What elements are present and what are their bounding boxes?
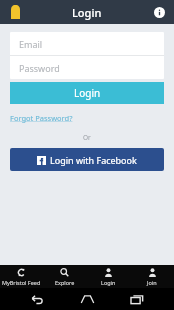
button[interactable]: Information	[150, 3, 168, 21]
staticText: MyBristol Feed	[2, 279, 41, 286]
button[interactable]: Forgot Password?	[10, 112, 73, 124]
button[interactable]: Password	[10, 56, 164, 79]
button[interactable]: MyBristol Feed	[0, 265, 43, 288]
button[interactable]: Email	[10, 32, 164, 55]
staticText: Login	[72, 5, 102, 20]
button[interactable]: Menu	[6, 3, 24, 21]
button[interactable]: Back	[24, 288, 50, 310]
button[interactable]: Login	[86, 265, 130, 288]
button[interactable]: Home	[74, 288, 100, 310]
staticText: Join	[147, 279, 157, 286]
staticText: Login	[101, 279, 116, 286]
staticText: Password	[19, 62, 60, 74]
staticText: Login	[74, 86, 101, 100]
button[interactable]: Login with Facebook	[10, 148, 164, 171]
staticText: Login with Facebook	[50, 154, 137, 166]
button[interactable]: Login	[10, 82, 164, 104]
staticText: Forgot Password?	[10, 113, 73, 123]
staticText: Email	[19, 38, 43, 50]
staticText: Explore	[55, 279, 75, 286]
staticText: Or	[83, 133, 91, 142]
button[interactable]: Explore	[43, 265, 86, 288]
button[interactable]: Join	[130, 265, 174, 288]
button[interactable]: Recent apps	[124, 288, 150, 310]
